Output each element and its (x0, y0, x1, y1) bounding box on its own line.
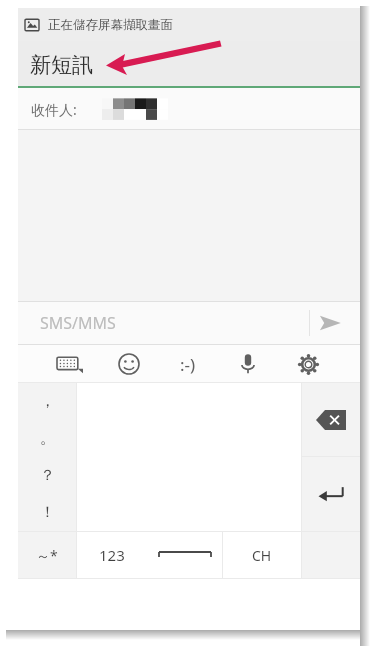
button[interactable]: Keyboard layout (40, 345, 99, 383)
staticText: 新短訊 (30, 52, 93, 78)
button[interactable]: ， (18, 383, 76, 420)
button[interactable]: Keyboard settings (278, 345, 338, 383)
button[interactable]: ～* (18, 532, 76, 578)
staticText: 。 (40, 429, 55, 448)
staticText: ？ (40, 466, 55, 485)
button[interactable]: ！ (18, 494, 76, 531)
staticText: ～* (36, 546, 58, 565)
staticText: SMS/MMS (40, 312, 116, 334)
staticText: ， (40, 392, 55, 411)
button[interactable]: 123 (77, 532, 147, 578)
button[interactable]: 收件人: (18, 88, 360, 130)
button[interactable]: CH (223, 532, 301, 578)
button[interactable]: Voice input (218, 345, 278, 383)
button[interactable]: 。 (18, 420, 76, 457)
button[interactable]: Emoticons (158, 345, 218, 383)
button[interactable]: Enter (302, 457, 360, 531)
button[interactable]: Space (147, 532, 222, 578)
staticText: ！ (40, 503, 55, 522)
staticText: CH (252, 546, 272, 565)
staticText: :-) (180, 353, 196, 376)
staticText: 收件人: (31, 100, 77, 119)
button[interactable]: ？ (18, 457, 76, 494)
button[interactable]: Send (310, 303, 350, 343)
staticText: 正在儲存屏幕擷取畫面 (48, 17, 173, 33)
button[interactable]: Backspace (302, 383, 360, 456)
staticText: 123 (99, 545, 125, 565)
button[interactable]: Emoji (99, 345, 158, 383)
